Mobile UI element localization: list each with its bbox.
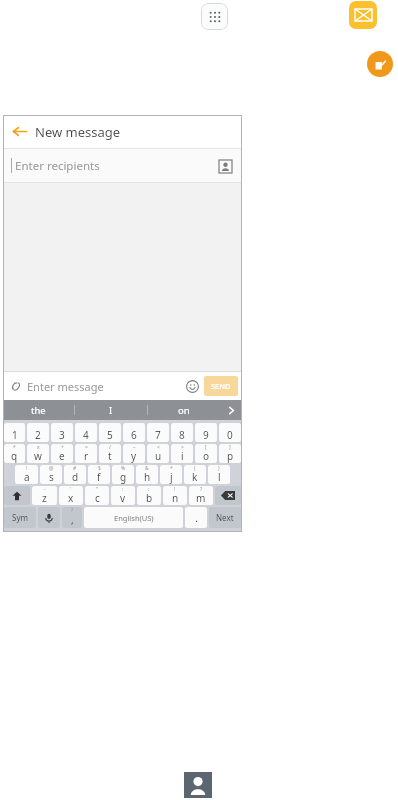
staticText: Sym (12, 512, 28, 523)
staticText: SEND (211, 381, 231, 391)
staticText: o (203, 449, 210, 463)
staticText: ] (229, 444, 231, 451)
staticText: ! (174, 486, 176, 493)
button[interactable]: Enter recipients (3, 149, 242, 182)
staticText: * (170, 465, 173, 472)
button[interactable]: 4 (75, 423, 97, 442)
button[interactable]: ! (163, 486, 187, 505)
staticText: n (172, 491, 179, 505)
staticText: Enter recipients (15, 158, 100, 174)
button[interactable]: : (111, 486, 135, 505)
staticText: u (155, 449, 162, 463)
button[interactable]: ; (137, 486, 161, 505)
button[interactable]: . (185, 507, 207, 528)
button[interactable]: = (75, 444, 97, 463)
button[interactable]: 8 (171, 423, 193, 442)
staticText: ? (71, 507, 74, 514)
button[interactable]: > (171, 444, 193, 463)
staticText: p (227, 449, 234, 463)
staticText: d (72, 470, 79, 484)
staticText: m (196, 491, 206, 505)
button[interactable]: 9 (195, 423, 217, 442)
button[interactable]: Sym (4, 507, 36, 528)
staticText: the (31, 404, 46, 417)
staticText: h (144, 470, 151, 484)
button[interactable]: / (99, 444, 121, 463)
staticText: 8 (179, 428, 185, 442)
button[interactable]: - (32, 486, 57, 505)
staticText: I (109, 404, 113, 417)
button[interactable]: – (123, 444, 145, 463)
button[interactable]: on (148, 400, 220, 420)
button[interactable]: 7 (147, 423, 169, 442)
button[interactable]: 1 (4, 423, 25, 442)
button[interactable]: ? (189, 486, 213, 505)
button[interactable]: Backspace (215, 486, 241, 505)
staticText: Next (216, 512, 234, 523)
button[interactable]: Back (3, 115, 242, 148)
staticText: % (121, 465, 126, 472)
button[interactable]: & (136, 465, 158, 484)
button[interactable]: 6 (123, 423, 145, 442)
button[interactable]: " (85, 486, 109, 505)
button[interactable]: Compose new message (367, 51, 393, 77)
button[interactable]: # (64, 465, 86, 484)
button[interactable]: Shift (4, 486, 30, 505)
button[interactable]: 3 (51, 423, 73, 442)
staticText: ! (26, 465, 28, 472)
staticText: 0 (227, 428, 233, 442)
button[interactable]: 0 (219, 423, 241, 442)
staticText: 6 (131, 428, 137, 442)
button[interactable]: $ (88, 465, 110, 484)
button[interactable]: 2 (27, 423, 49, 442)
staticText: x (37, 444, 40, 451)
button[interactable]: ! (15, 465, 38, 484)
staticText: - (44, 486, 46, 493)
button[interactable]: Apps (201, 3, 228, 30)
button[interactable]: @ (40, 465, 62, 484)
staticText: English(US) (114, 513, 154, 523)
staticText: New message (35, 123, 121, 141)
staticText: 4 (83, 428, 89, 442)
staticText: $ (98, 465, 101, 472)
button[interactable]: I (75, 400, 147, 420)
button[interactable]: ( (184, 465, 206, 484)
staticText: t (108, 449, 112, 463)
staticText: c (95, 491, 100, 505)
button[interactable]: Add recipient from contacts (212, 153, 238, 179)
button[interactable]: ? (62, 507, 82, 528)
button[interactable]: the (3, 400, 74, 420)
staticText: k (192, 470, 198, 484)
staticText: ; (148, 486, 150, 493)
staticText: / (109, 444, 111, 451)
button[interactable]: < (147, 444, 169, 463)
button[interactable]: Next (209, 507, 241, 528)
button[interactable]: ) (208, 465, 230, 484)
button[interactable]: * (160, 465, 182, 484)
staticText: f (97, 470, 101, 484)
button[interactable]: + (51, 444, 73, 463)
button[interactable]: Attach (3, 374, 27, 398)
button[interactable]: ' (59, 486, 83, 505)
button[interactable]: Messages (349, 1, 377, 29)
button[interactable]: SEND (204, 376, 238, 396)
staticText: 7 (155, 428, 161, 442)
button[interactable]: * (4, 444, 25, 463)
button[interactable]: Back (3, 115, 35, 148)
button[interactable]: English(US) (84, 507, 183, 528)
staticText: 1 (12, 428, 18, 442)
staticText: s (49, 470, 54, 484)
button[interactable]: ] (219, 444, 241, 463)
button[interactable]: % (112, 465, 134, 484)
button[interactable]: Voice input (38, 507, 60, 528)
button[interactable]: [ (195, 444, 217, 463)
staticText: @ (49, 465, 54, 472)
staticText: on (178, 404, 190, 417)
button[interactable]: Emoji (180, 374, 204, 398)
staticText: – (133, 444, 136, 451)
button[interactable]: x (27, 444, 49, 463)
button[interactable]: More suggestions (220, 400, 242, 420)
button[interactable]: 5 (99, 423, 121, 442)
staticText: ? (200, 486, 203, 493)
staticText: ' (70, 486, 72, 493)
